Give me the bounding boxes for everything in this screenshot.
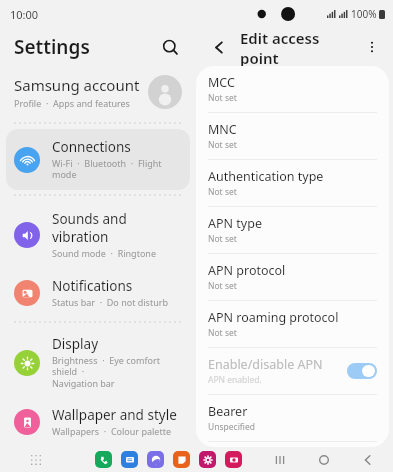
staticText: Enable/disable APN (208, 356, 323, 373)
staticText: Sounds and vibration (52, 210, 182, 246)
staticText: 100% (351, 7, 377, 21)
staticText: Themes (52, 455, 103, 463)
staticText: Authentication type (208, 168, 324, 185)
button[interactable]: Back (206, 34, 232, 60)
button[interactable]: More options (359, 34, 385, 60)
staticText: APN type (208, 215, 262, 232)
button[interactable]: Messages (121, 451, 138, 468)
button[interactable]: Back (357, 449, 379, 471)
staticText: APN roaming protocol (208, 309, 339, 326)
staticText: Not set (208, 327, 237, 339)
staticText: Settings (14, 34, 90, 60)
button[interactable]: APN roaming protocol (196, 301, 389, 347)
button[interactable]: Connections (6, 129, 190, 190)
staticText: MCC (208, 74, 235, 91)
staticText: Notifications (52, 277, 133, 295)
staticText: APN enabled. (208, 374, 262, 386)
staticText: Brightness · Eye comfort shield · Naviga… (52, 354, 182, 390)
staticText: MNC (208, 121, 237, 138)
staticText: Edit access point (240, 28, 359, 66)
button[interactable]: Enable/disable APN (196, 348, 389, 394)
staticText: Wi-Fi · Bluetooth · Flight mode (52, 157, 182, 181)
button[interactable]: Display (6, 328, 190, 397)
staticText: Not set (208, 280, 237, 292)
button[interactable]: Enable or disable APN (347, 363, 377, 379)
button[interactable]: Wallpaper and style (6, 397, 190, 446)
button[interactable]: MNC (196, 113, 389, 159)
button[interactable]: APN protocol (196, 254, 389, 300)
button[interactable]: Notifications (6, 268, 190, 317)
button[interactable]: MCC (196, 66, 389, 112)
button[interactable]: Internet (147, 451, 164, 468)
staticText: Not set (208, 139, 237, 151)
staticText: Not set (208, 186, 237, 198)
staticText: Status bar · Do not disturb (52, 296, 168, 308)
button[interactable]: Sounds and vibration (6, 201, 190, 268)
staticText: Unspecified (208, 421, 255, 433)
button[interactable]: Search (156, 33, 184, 61)
button[interactable]: Notes (173, 451, 190, 468)
button[interactable]: Authentication type (196, 160, 389, 206)
staticText: Wallpaper and style (52, 406, 177, 424)
staticText: APN protocol (208, 262, 286, 279)
button[interactable]: Bearer (196, 395, 389, 441)
staticText: Display (52, 335, 99, 353)
button[interactable]: Phone (95, 451, 112, 468)
staticText: 10:00 (10, 7, 39, 22)
staticText: Profile · Apps and features (14, 97, 130, 109)
button[interactable]: Camera (225, 451, 242, 468)
button[interactable]: Gallery (199, 451, 216, 468)
staticText: Sound mode · Ringtone (52, 247, 156, 259)
button[interactable]: Apps (26, 450, 46, 470)
button[interactable]: Samsung account (0, 66, 196, 118)
staticText: Wallpapers · Colour palette (52, 425, 171, 437)
staticText: Connections (52, 138, 131, 156)
button[interactable]: APN type (196, 207, 389, 253)
staticText: Samsung account (14, 75, 140, 95)
staticText: Not set (208, 92, 237, 104)
staticText: Not set (208, 233, 237, 245)
staticText: Bearer (208, 403, 248, 420)
button[interactable]: Home (313, 449, 335, 471)
button[interactable]: Themes (6, 446, 190, 472)
button[interactable]: Recents (269, 449, 291, 471)
